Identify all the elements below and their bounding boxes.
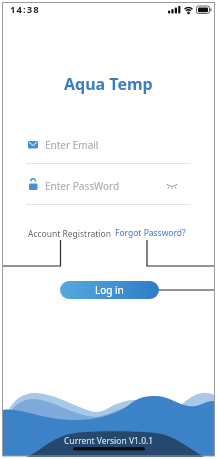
staticText: Current Version V1.0.1 [64, 435, 154, 447]
button[interactable]: Enter Email [26, 136, 191, 164]
staticText: Aqua Temp [64, 73, 153, 95]
button[interactable]: Forgot Password? [115, 227, 186, 239]
staticText: Enter Email [45, 138, 99, 152]
staticText: 14:38 [10, 3, 40, 16]
button[interactable]: Enter PassWord [26, 177, 191, 205]
button[interactable]: Account Registration [28, 228, 111, 240]
button[interactable]: Log in [60, 281, 159, 299]
staticText: Enter PassWord [45, 179, 120, 193]
staticText: Log in [95, 283, 124, 297]
